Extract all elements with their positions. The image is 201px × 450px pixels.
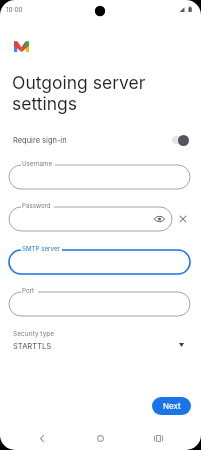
button[interactable]: Recent apps: [148, 428, 168, 448]
staticText: Username: [22, 160, 53, 168]
staticText: SMTP server: [22, 245, 60, 253]
button[interactable]: Security type: [0, 326, 201, 356]
staticText: Require sign-in: [13, 136, 67, 145]
staticText: Port: [22, 287, 35, 295]
staticText: Outgoing server settings: [12, 72, 172, 114]
button[interactable]: Next: [152, 397, 191, 415]
button[interactable]: Password: [9, 207, 172, 231]
staticText: Next: [163, 401, 181, 411]
button[interactable]: Home: [90, 428, 110, 448]
staticText: Security type: [13, 330, 55, 338]
button[interactable]: Port: [9, 292, 190, 316]
staticText: STARTTLS: [13, 342, 52, 351]
staticText: Password: [22, 202, 51, 210]
button[interactable]: Back: [32, 428, 52, 448]
button[interactable]: Require sign-in: [0, 131, 201, 149]
button[interactable]: Username: [9, 165, 190, 189]
button[interactable]: Clear password: [175, 211, 191, 227]
button[interactable]: SMTP server: [9, 250, 190, 274]
button[interactable]: Show password: [152, 212, 166, 226]
staticText: 10:00: [6, 6, 23, 14]
